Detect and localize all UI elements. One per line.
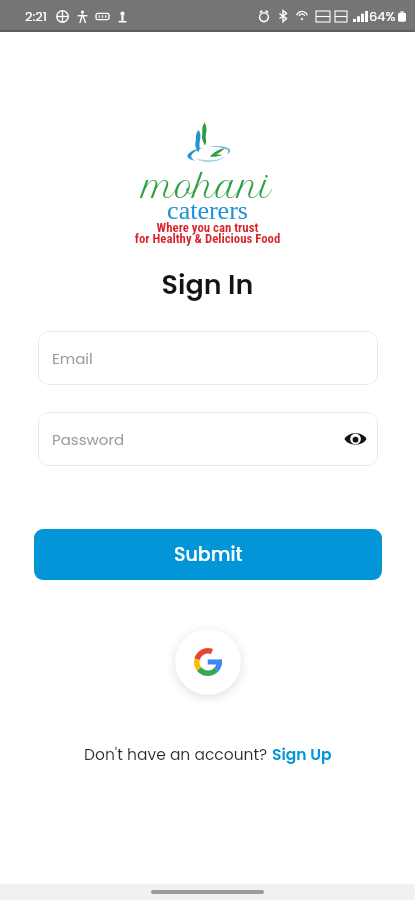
- staticText: caterers: [0, 196, 415, 225]
- staticText: Email: [52, 348, 93, 369]
- staticText: mohani: [0, 167, 415, 206]
- staticText: 2:21: [25, 7, 47, 25]
- button[interactable]: Email: [38, 331, 378, 385]
- staticText: Password: [52, 429, 125, 450]
- button[interactable]: Toggle password visibility: [340, 424, 370, 454]
- button[interactable]: Sign in with Google: [175, 629, 241, 695]
- staticText: Sign In: [0, 266, 415, 304]
- button[interactable]: Password: [38, 412, 378, 466]
- staticText: for Healthy & Delicious Food: [0, 231, 415, 246]
- button[interactable]: Submit: [34, 529, 382, 580]
- button[interactable]: Sign Up: [272, 744, 332, 766]
- staticText: Don't have an account?: [84, 744, 272, 766]
- staticText: Where you can trust: [0, 220, 415, 235]
- staticText: 64%: [369, 7, 396, 25]
- staticText: Sign Up: [272, 744, 332, 766]
- staticText: Submit: [174, 541, 243, 568]
